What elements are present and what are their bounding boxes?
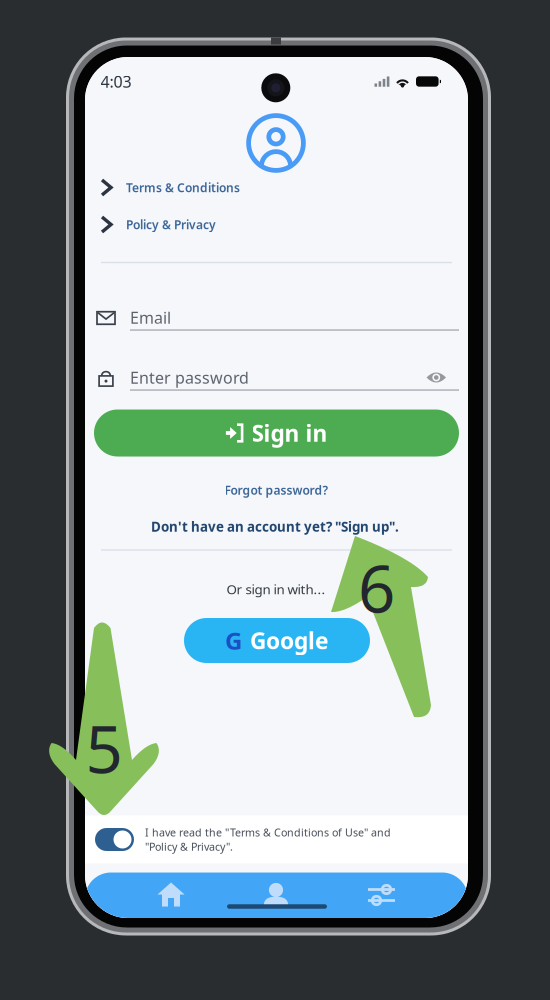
staticText: Google <box>250 625 329 655</box>
button[interactable]: Don't have an account yet? "Sign up". <box>151 515 399 537</box>
button[interactable]: Settings <box>367 883 395 906</box>
staticText: G <box>225 625 242 656</box>
staticText: Or sign in with... <box>226 580 325 598</box>
staticText: Forgot password? <box>224 482 328 498</box>
staticText: I have read the "Terms & Conditions of U… <box>145 825 391 854</box>
button[interactable]: Home <box>157 882 185 907</box>
staticText: Email <box>130 307 171 328</box>
staticText: 5 <box>85 705 122 791</box>
button[interactable]: G <box>184 618 370 663</box>
button[interactable]: Show password <box>426 371 446 384</box>
button[interactable]: Profile <box>263 882 288 907</box>
staticText: Don't have an account yet? "Sign up". <box>151 518 399 535</box>
staticText: 6 <box>358 544 395 631</box>
staticText: Enter password <box>130 367 249 388</box>
button[interactable]: Sign in <box>94 409 459 456</box>
staticText: Sign in <box>251 418 327 448</box>
staticText: Policy & Privacy <box>126 216 216 232</box>
button[interactable]: Terms & Conditions <box>85 173 468 201</box>
staticText: 4:03 <box>100 71 131 92</box>
button[interactable]: Policy & Privacy <box>85 210 468 238</box>
staticText: Terms & Conditions <box>126 179 240 195</box>
button[interactable]: Accept terms and conditions <box>95 828 134 851</box>
button[interactable]: Forgot password? <box>224 480 328 500</box>
